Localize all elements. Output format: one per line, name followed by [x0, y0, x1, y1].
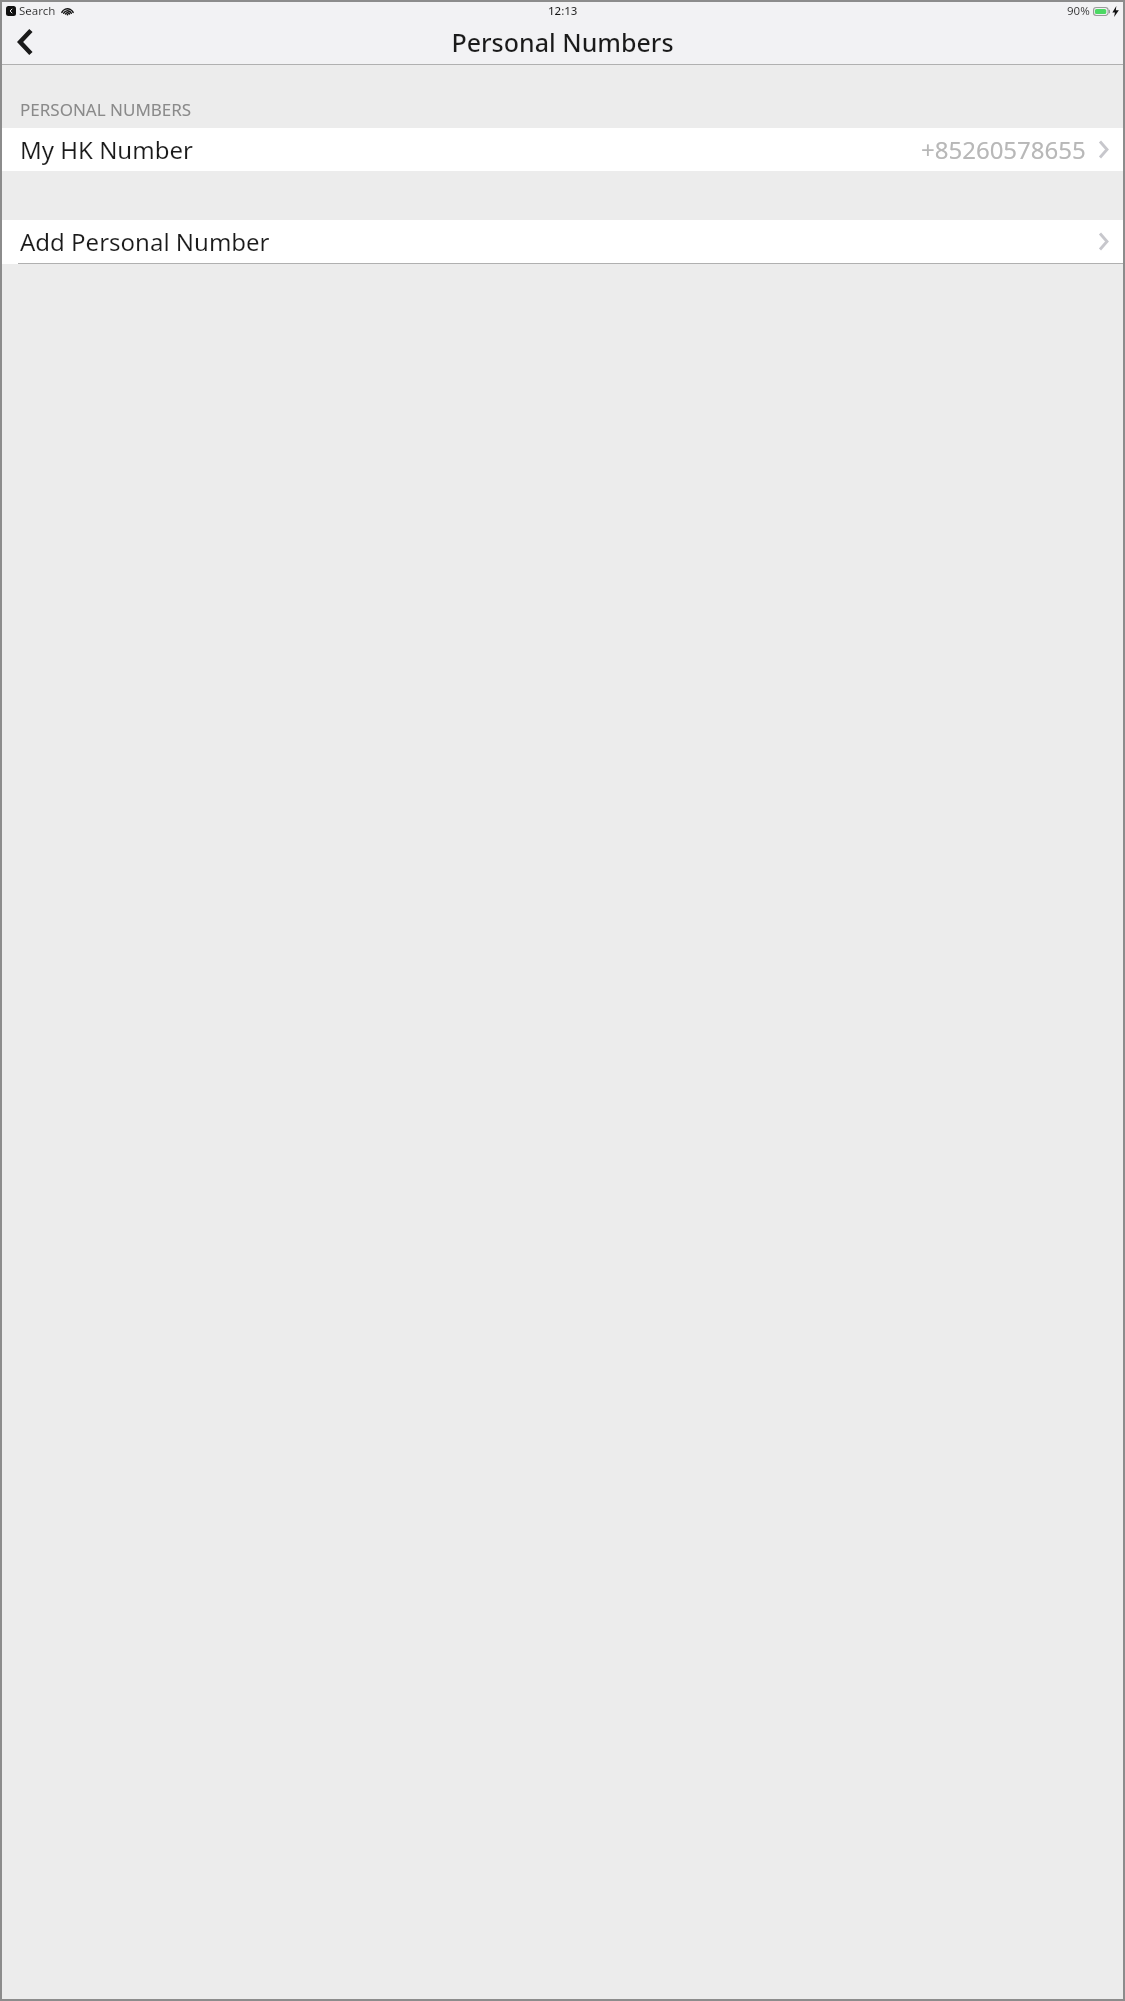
- button[interactable]: My HK Number: [2, 128, 1123, 171]
- button[interactable]: Back: [8, 20, 42, 64]
- staticText: +85260578655: [921, 133, 1086, 166]
- staticText: PERSONAL NUMBERS: [20, 98, 192, 121]
- staticText: 12:13: [548, 3, 578, 19]
- staticText: My HK Number: [20, 133, 193, 166]
- staticText: Personal Numbers: [451, 25, 674, 59]
- staticText: Search: [19, 3, 56, 19]
- button[interactable]: Add Personal Number: [2, 220, 1123, 264]
- staticText: Add Personal Number: [20, 225, 270, 258]
- staticText: 90%: [1067, 3, 1090, 19]
